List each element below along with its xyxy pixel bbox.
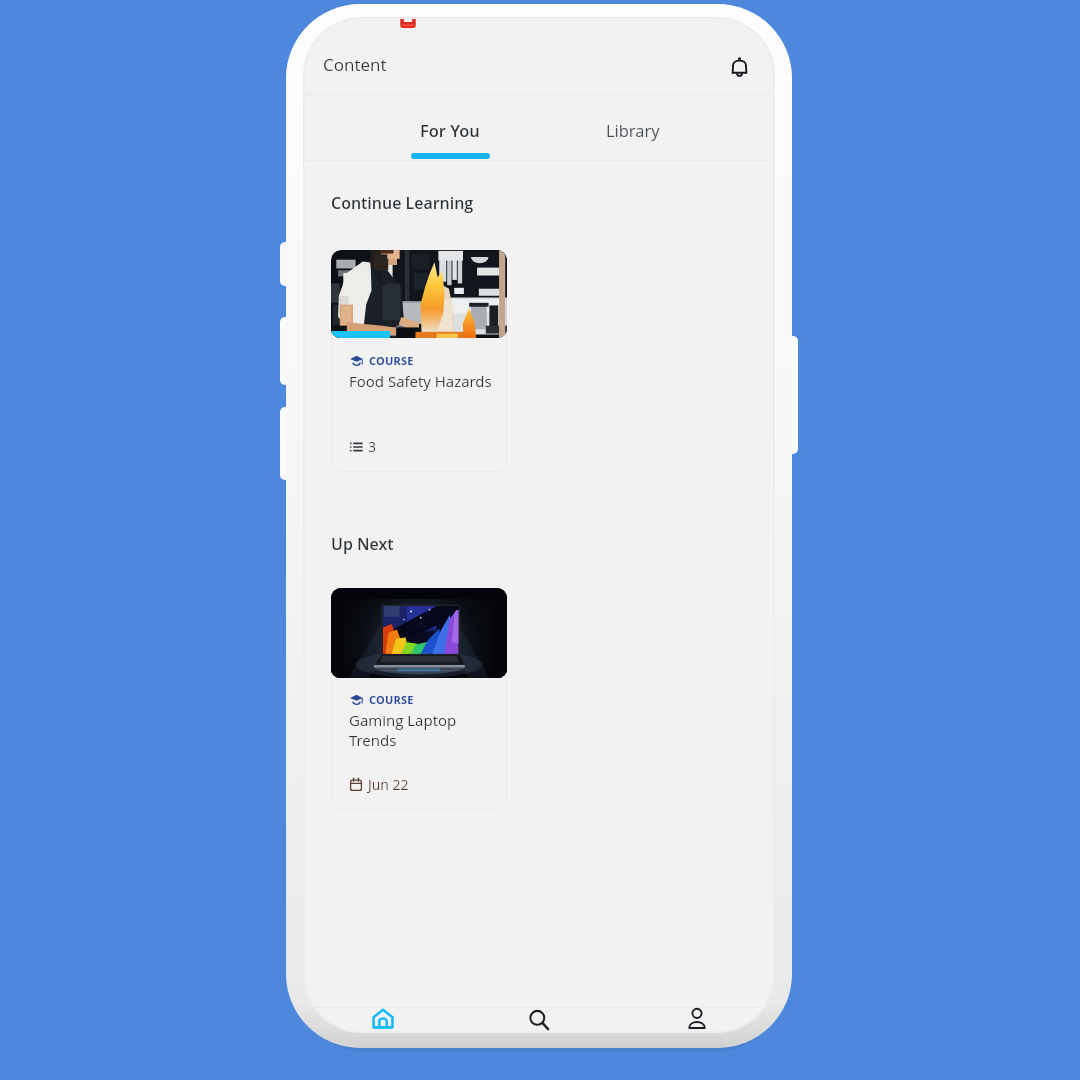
- staticText: For You: [420, 119, 480, 141]
- button[interactable]: COURSE: [331, 588, 507, 810]
- button[interactable]: For You: [372, 95, 528, 160]
- staticText: Library: [606, 119, 660, 141]
- staticText: Up Next: [331, 533, 394, 555]
- staticText: COURSE: [369, 353, 414, 368]
- button[interactable]: Library: [555, 95, 711, 160]
- button[interactable]: Home: [305, 1008, 461, 1031]
- staticText: COURSE: [369, 692, 414, 707]
- button[interactable]: Profile: [617, 1008, 773, 1031]
- staticText: 3: [368, 437, 377, 456]
- staticText: Gaming Laptop Trends: [349, 710, 481, 750]
- staticText: Content: [323, 53, 387, 76]
- button[interactable]: COURSE: [331, 250, 507, 472]
- button[interactable]: Notifications: [719, 46, 759, 86]
- staticText: Food Safety Hazards: [349, 371, 492, 391]
- staticText: Continue Learning: [331, 192, 474, 214]
- button[interactable]: Search: [461, 1008, 617, 1031]
- staticText: Jun 22: [368, 775, 409, 794]
